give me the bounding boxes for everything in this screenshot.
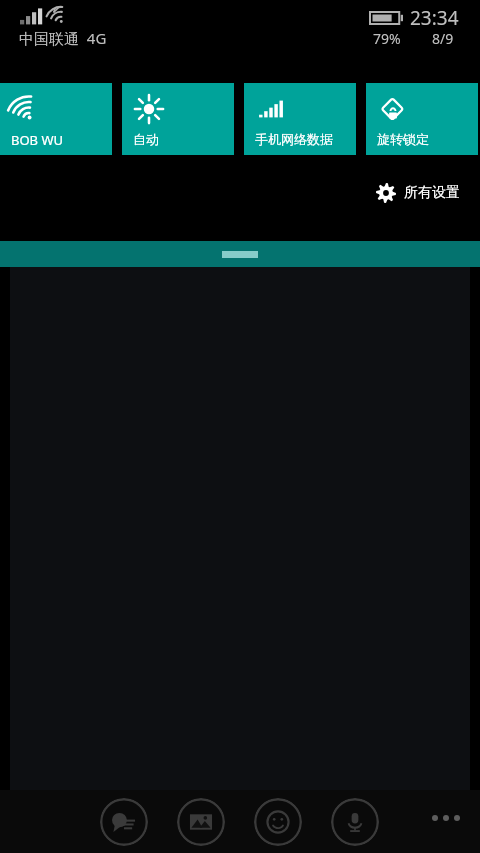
button[interactable]: 旋转锁定	[366, 83, 478, 155]
staticText: BOB WU	[11, 131, 64, 149]
staticText: 旋转锁定	[377, 131, 429, 147]
button[interactable]: Messages	[100, 798, 148, 846]
staticText: 所有设置	[404, 184, 460, 202]
button[interactable]: Voice	[331, 798, 379, 846]
button[interactable]: BOB WU	[0, 83, 112, 155]
staticText: 79%	[373, 29, 401, 48]
staticText: 中国联通 4G	[19, 28, 107, 48]
button[interactable]: More options	[430, 813, 462, 823]
button[interactable]: 手机网络数据	[244, 83, 356, 155]
button[interactable]: Collapse quick settings	[0, 241, 480, 267]
button[interactable]: 自动	[122, 83, 234, 155]
staticText: 23:34	[410, 5, 459, 31]
button[interactable]: Gallery	[177, 798, 225, 846]
button[interactable]: Emoji	[254, 798, 302, 846]
staticText: 自动	[133, 131, 159, 147]
staticText: 8/9	[432, 29, 454, 48]
staticText: 手机网络数据	[255, 131, 333, 147]
button[interactable]: 所有设置	[372, 179, 464, 207]
